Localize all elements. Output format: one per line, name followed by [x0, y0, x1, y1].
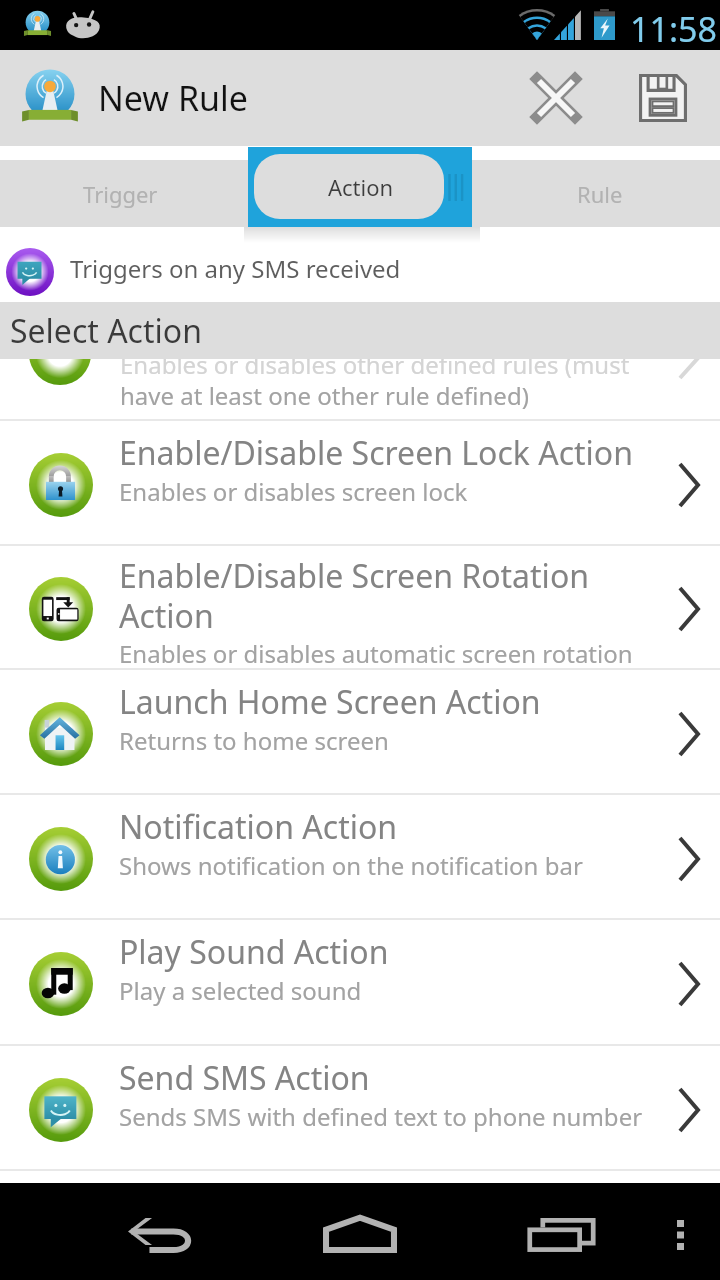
button[interactable]: Back — [60, 1183, 260, 1280]
button[interactable] — [240, 160, 480, 227]
staticText: Play a selected sound — [119, 974, 362, 1007]
staticText: Select Action — [10, 309, 202, 353]
button[interactable]: Trigger — [0, 160, 240, 227]
button[interactable]: Rule — [480, 160, 720, 227]
staticText: have at least one other rule defined) — [120, 379, 529, 412]
staticText: Enable/Disable Screen Rotation Action — [119, 554, 667, 637]
staticText: Launch Home Screen Action — [119, 680, 541, 724]
button[interactable]: Home — [280, 1183, 440, 1280]
staticText: Enables or disables other defined rules … — [120, 359, 630, 381]
staticText: 11:58 — [630, 6, 717, 52]
staticText: Returns to home screen — [119, 724, 389, 757]
button[interactable]: Notification Action — [0, 795, 720, 920]
staticText: Send SMS Action — [119, 1056, 370, 1100]
button[interactable]: Send SMS Action — [0, 1046, 720, 1171]
button[interactable]: Enable/Disable Screen Rotation Action — [0, 546, 720, 670]
staticText: Play Sound Action — [119, 930, 389, 974]
button[interactable]: Enable/Disable Screen Lock Action — [0, 421, 720, 546]
button[interactable]: Launch Home Screen Action — [0, 670, 720, 795]
button[interactable]: Play Sound Action — [0, 920, 720, 1046]
staticText: Enables or disables screen lock — [119, 475, 468, 508]
staticText: Shows notification on the notification b… — [119, 849, 583, 882]
button[interactable]: Recent apps — [480, 1183, 630, 1280]
staticText: Notification Action — [119, 805, 398, 849]
staticText: Enables or disables automatic screen rot… — [119, 637, 633, 670]
button[interactable]: Action — [248, 147, 472, 227]
staticText: Enable/Disable Screen Lock Action — [119, 431, 633, 475]
staticText: Sends SMS with defined text to phone num… — [119, 1100, 643, 1133]
button[interactable]: Save — [606, 50, 720, 146]
button[interactable]: Cancel — [506, 50, 606, 146]
button[interactable]: More options — [640, 1183, 720, 1280]
staticText: Triggers on any SMS received — [70, 252, 401, 285]
button[interactable]: Triggers on any SMS received — [0, 227, 720, 302]
button[interactable]: Enables or disables other defined rules … — [0, 359, 720, 421]
staticText: Rule — [577, 179, 623, 209]
staticText: Action — [328, 172, 394, 202]
staticText: New Rule — [98, 75, 249, 121]
staticText: Trigger — [83, 179, 158, 209]
